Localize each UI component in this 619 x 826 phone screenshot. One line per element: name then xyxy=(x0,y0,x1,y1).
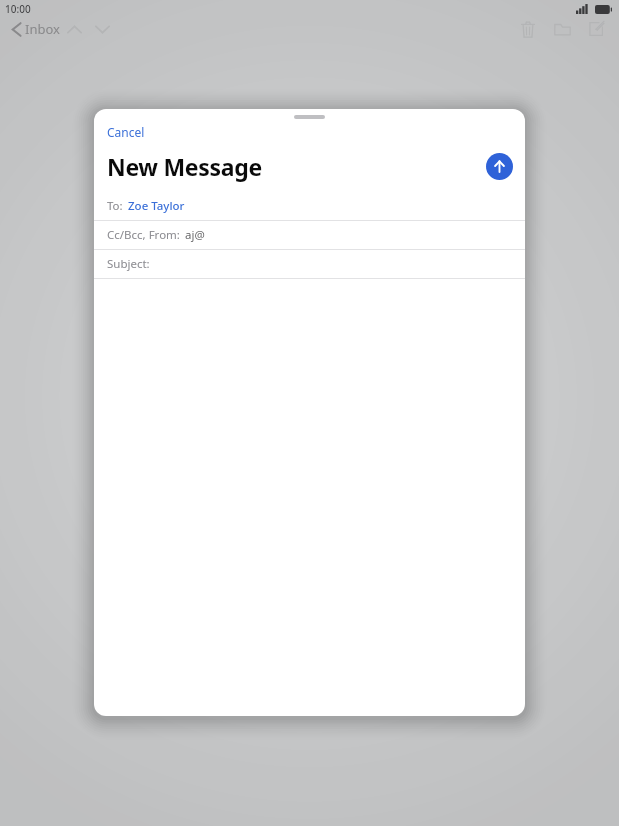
staticText: Subject: xyxy=(107,256,150,272)
button[interactable]: Delete xyxy=(513,14,543,44)
button[interactable]: Send xyxy=(486,153,513,180)
staticText: New Message xyxy=(107,151,262,182)
button[interactable]: Cc/Bcc, From: xyxy=(94,221,525,249)
staticText: Zoe Taylor xyxy=(128,198,185,214)
staticText: aj@ xyxy=(185,227,205,243)
staticText: To: xyxy=(107,198,123,214)
button[interactable]: Cancel xyxy=(103,122,149,142)
button[interactable]: Inbox xyxy=(8,17,64,41)
button[interactable]: To: xyxy=(94,192,525,220)
button[interactable]: Subject: xyxy=(94,250,525,278)
staticText: 10:00 xyxy=(5,2,31,16)
staticText: Cancel xyxy=(107,124,145,140)
staticText: Inbox xyxy=(25,20,60,38)
staticText: Cc/Bcc, From: xyxy=(107,227,180,243)
